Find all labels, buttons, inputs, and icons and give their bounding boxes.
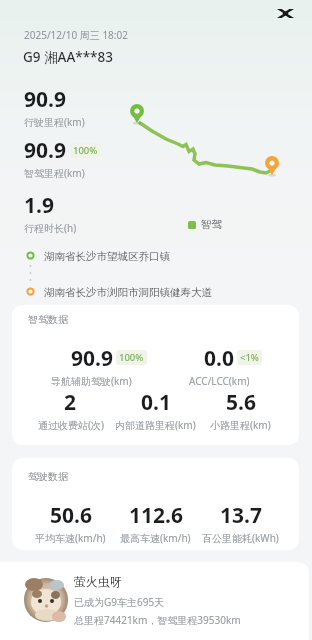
staticText: 100% [73,144,98,157]
staticText: 行程时长(h) [24,221,77,235]
staticText: 0.1 [141,388,171,417]
staticText: 湖南省长沙市浏阳市洞阳镇健寿大道 [44,286,212,299]
staticText: 90.9 [24,136,66,165]
staticText: 内部道路里程(km) [115,418,196,432]
staticText: 112.6 [129,501,183,530]
staticText: 百公里能耗(kWh) [202,531,279,545]
staticText: 湖南省长沙市望城区乔口镇 [44,250,170,263]
staticText: 50.6 [50,501,92,530]
staticText: 萤火虫呀 [74,574,122,589]
staticText: 通过收费站(次) [38,418,104,432]
button[interactable] [277,9,294,18]
staticText: 智驾 [201,218,222,231]
staticText: <1% [240,351,259,364]
staticText: 5.6 [226,388,256,417]
staticText: 行驶里程(km) [24,115,85,129]
staticText: 导航辅助驾驶(km) [51,374,132,388]
staticText: 1.9 [24,191,54,220]
button[interactable]: 智驾数据 [12,305,299,445]
staticText: 小路里程(km) [210,418,271,432]
staticText: 2 [64,388,77,417]
button[interactable]: 萤火虫呀 [0,562,309,640]
staticText: 平均车速(km/h) [35,531,106,545]
staticText: 最高车速(km/h) [120,531,191,545]
staticText: 已成为G9车主695天 [74,595,165,609]
staticText: 90.9 [24,85,66,114]
staticText: 90.9 [71,344,113,373]
staticText: 13.7 [220,501,262,530]
staticText: 2025/12/10 周三 18:02 [24,28,128,42]
staticText: 100% [119,351,144,364]
staticText: 0.0 [204,344,234,373]
staticText: 驾驶数据 [28,470,68,483]
staticText: G9 湘AA***83 [23,48,113,66]
staticText: ACC/LCC(km) [189,374,250,388]
staticText: 智驾里程(km) [24,166,85,180]
staticText: 总里程74421km，智驾里程39530km [74,613,241,627]
staticText: 智驾数据 [28,313,68,326]
button[interactable]: 驾驶数据 [12,458,299,550]
